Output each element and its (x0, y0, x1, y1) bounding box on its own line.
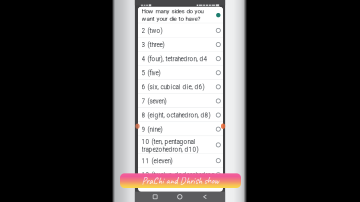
button[interactable]: Back (200, 192, 209, 201)
staticText: 6 (six, cubical die, d6) (142, 84, 205, 91)
button[interactable]: 3 (three) (138, 37, 223, 52)
button[interactable]: 5 (five) (138, 66, 223, 80)
button[interactable]: 4 (four), tetrahedron, d4 (138, 52, 223, 66)
staticText: 10 (ten, pentagonal (142, 138, 196, 145)
staticText: 11 (eleven) (142, 157, 173, 165)
staticText: How many sides do you (142, 7, 204, 15)
button[interactable]: 8 (eight, octahedron, d8) (138, 108, 223, 122)
button[interactable]: 2 (two) (138, 23, 223, 37)
button[interactable]: 6 (six, cubical die, d6) (138, 80, 223, 94)
staticText: PraChi and Dhrish show (142, 175, 219, 187)
staticText: 4 (four), tetrahedron, d4 (142, 55, 208, 63)
staticText: 7 (seven) (142, 98, 167, 105)
button[interactable]: 7 (seven) (138, 94, 223, 108)
staticText: 8 (eight, octahedron, d8) (142, 112, 211, 119)
button[interactable]: Home (175, 192, 184, 201)
staticText: 5 (five) (142, 69, 161, 77)
staticText: 3 (three) (142, 41, 165, 48)
button[interactable]: 12 (twelve, dodecahedron, (138, 168, 223, 182)
button[interactable]: 11 (eleven) (138, 154, 223, 168)
button[interactable]: Recent apps (151, 193, 159, 201)
staticText: 9 (nine) (142, 126, 163, 133)
staticText: 12 (twelve, dodecahedron, (142, 171, 216, 179)
button[interactable]: 9 (nine) (138, 122, 223, 136)
staticText: want your die to have? (142, 15, 201, 22)
button[interactable]: 10 (ten, pentagonal (138, 136, 223, 154)
staticText: trapezohedron, d10) (142, 146, 199, 153)
staticText: 2 (two) (142, 27, 163, 34)
